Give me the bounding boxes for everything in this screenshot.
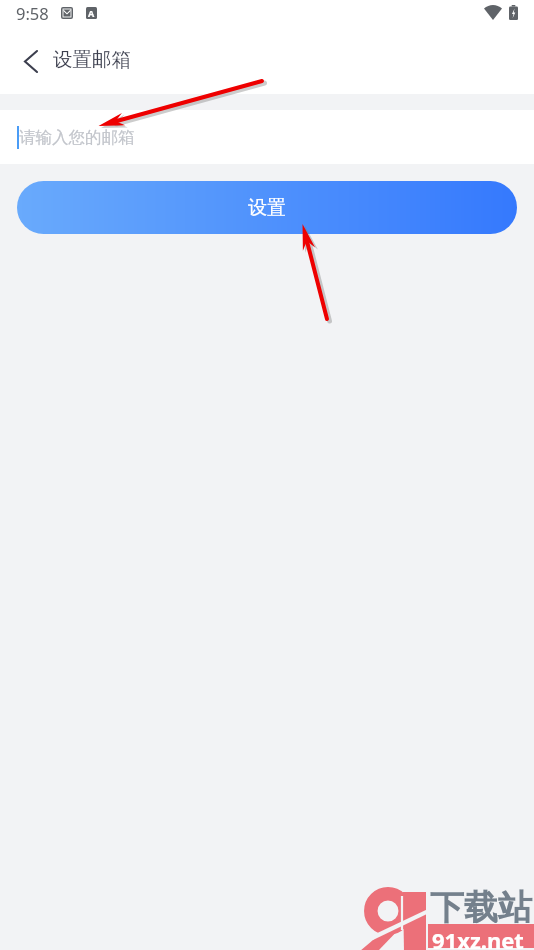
staticText: 9:58 xyxy=(16,2,49,24)
button[interactable]: 请输入您的邮箱 xyxy=(0,110,534,164)
staticText: A xyxy=(88,7,95,19)
staticText: 91xz.net xyxy=(432,925,524,949)
staticText: 设置 xyxy=(248,196,286,220)
staticText: 请输入您的邮箱 xyxy=(19,127,135,148)
staticText: 设置邮箱 xyxy=(53,47,131,72)
button[interactable]: Back xyxy=(8,38,54,84)
button[interactable]: 设置 xyxy=(17,181,517,234)
staticText: 下载站 xyxy=(430,886,532,929)
